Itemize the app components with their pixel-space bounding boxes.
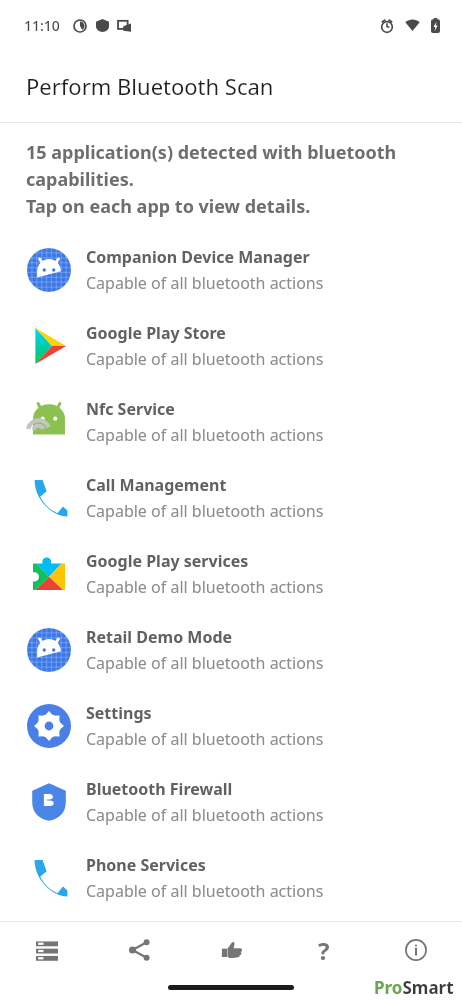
staticText: Bluetooth Firewall bbox=[86, 778, 233, 800]
staticText: Capable of all bluetooth actions bbox=[86, 804, 324, 826]
button[interactable]: Call Management bbox=[0, 460, 462, 536]
staticText: Capable of all bluetooth actions bbox=[86, 652, 324, 674]
button[interactable]: Menu bbox=[0, 922, 93, 978]
staticText: Capable of all bluetooth actions bbox=[86, 272, 324, 294]
staticText: Google Play Store bbox=[86, 322, 226, 344]
button[interactable]: Settings bbox=[0, 688, 462, 764]
button[interactable]: Nfc Service bbox=[0, 384, 462, 460]
button[interactable]: Share bbox=[93, 922, 186, 978]
staticText: Capable of all bluetooth actions bbox=[86, 880, 324, 902]
staticText: Capable of all bluetooth actions bbox=[86, 576, 324, 598]
staticText: Settings bbox=[86, 702, 152, 724]
staticText: Perform Bluetooth Scan bbox=[26, 71, 274, 101]
staticText: Nfc Service bbox=[86, 398, 175, 420]
staticText: Retail Demo Mode bbox=[86, 626, 233, 648]
button[interactable]: Companion Device Manager bbox=[0, 232, 462, 308]
button[interactable]: Rate bbox=[186, 922, 278, 978]
staticText: 11:10 bbox=[24, 16, 60, 35]
staticText: ProSmart bbox=[374, 976, 454, 999]
staticText: Companion Device Manager bbox=[86, 246, 310, 268]
staticText: 15 application(s) detected with bluetoot… bbox=[26, 140, 436, 218]
staticText: Google Play services bbox=[86, 550, 249, 572]
staticText: Phone Services bbox=[86, 854, 206, 876]
staticText: ? bbox=[318, 934, 330, 967]
staticText: Call Management bbox=[86, 474, 227, 496]
button[interactable]: Bluetooth Firewall bbox=[0, 764, 462, 840]
staticText: Capable of all bluetooth actions bbox=[86, 424, 324, 446]
button[interactable]: Info bbox=[370, 922, 462, 978]
staticText: Capable of all bluetooth actions bbox=[86, 728, 324, 750]
button[interactable]: Phone Services bbox=[0, 840, 462, 916]
button[interactable]: Retail Demo Mode bbox=[0, 612, 462, 688]
button[interactable]: Help bbox=[278, 922, 370, 978]
button[interactable]: Google Play Store bbox=[0, 308, 462, 384]
staticText: Capable of all bluetooth actions bbox=[86, 348, 324, 370]
button[interactable]: Google Play services bbox=[0, 536, 462, 612]
staticText: Capable of all bluetooth actions bbox=[86, 500, 324, 522]
